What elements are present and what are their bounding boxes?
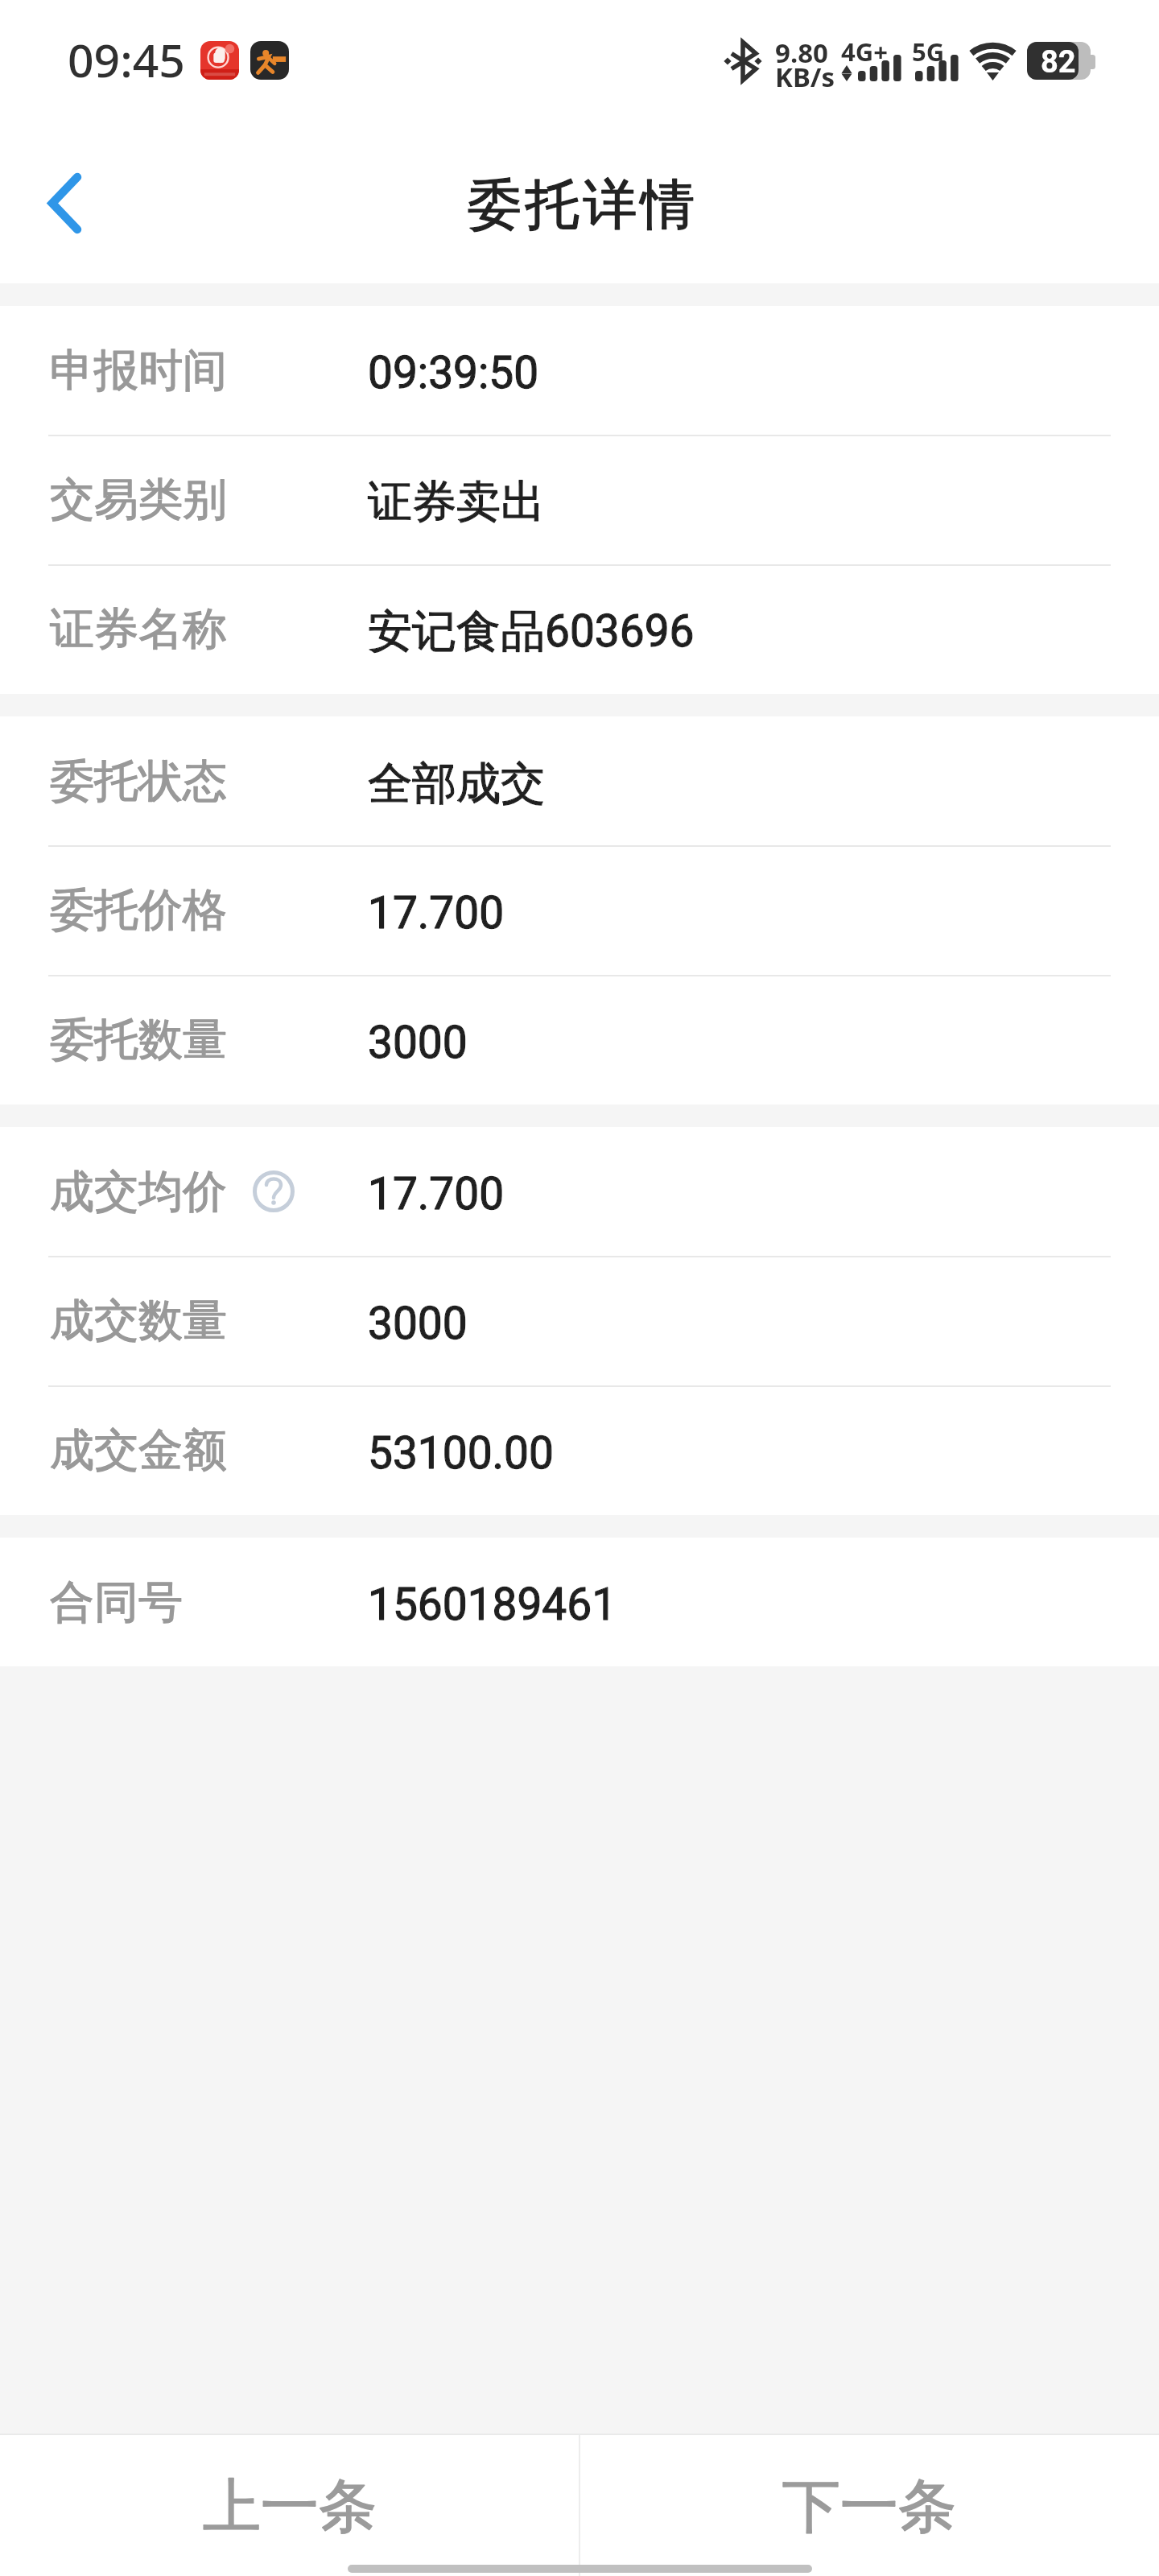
staticText: 17.700	[368, 887, 505, 939]
staticText: 5G	[912, 35, 945, 68]
staticText: 证券名称	[50, 601, 227, 657]
button[interactable]: 委托数量	[0, 975, 1159, 1104]
staticText: 9.80	[775, 35, 828, 71]
staticText: 09:39:50	[368, 347, 539, 398]
staticText: 上一条	[203, 2471, 377, 2544]
staticText: 17.700	[368, 1168, 505, 1220]
staticText: 下一条	[782, 2471, 956, 2544]
staticText: 17.700	[368, 1168, 505, 1220]
staticText: 下一条	[782, 2471, 956, 2544]
staticText: 3000	[368, 1298, 468, 1349]
staticText: 成交均价	[50, 1164, 227, 1220]
staticText: 1560189461	[368, 1579, 617, 1630]
staticText: 申报时间	[50, 343, 227, 398]
staticText: 17.700	[368, 887, 505, 939]
staticText: KB/s	[775, 59, 835, 95]
staticText: 53100.00	[368, 1427, 554, 1479]
staticText: 交易类别	[50, 472, 227, 527]
button[interactable]: Back	[0, 117, 129, 283]
button[interactable]: 申报时间	[0, 306, 1159, 435]
button[interactable]: 成交均价	[0, 1127, 1159, 1256]
staticText: 成交数量	[50, 1293, 227, 1348]
staticText: 成交均价	[50, 1164, 227, 1220]
staticText: 委托价格	[50, 882, 227, 938]
button[interactable]: 成交金额	[0, 1385, 1159, 1515]
staticText: 交易类别	[50, 472, 227, 527]
staticText: 安记食品603696	[368, 604, 695, 659]
staticText: 证券名称	[50, 601, 227, 657]
staticText: 3000	[368, 1017, 468, 1068]
staticText: 09:39:50	[368, 347, 539, 398]
button[interactable]: 委托价格	[0, 845, 1159, 975]
button[interactable]: 下一条	[579, 2434, 1159, 2576]
staticText: 1560189461	[368, 1579, 617, 1630]
staticText: 4G+	[841, 35, 888, 68]
staticText: 53100.00	[368, 1427, 554, 1479]
staticText: 成交金额	[50, 1422, 227, 1478]
staticText: 3000	[368, 1298, 468, 1349]
staticText: 安记食品603696	[368, 604, 695, 659]
staticText: 委托状态	[50, 753, 227, 809]
staticText: 合同号	[50, 1575, 183, 1630]
button[interactable]: 合同号	[0, 1538, 1159, 1666]
staticText: 成交数量	[50, 1293, 227, 1348]
staticText: 09:45	[68, 28, 185, 91]
staticText: 全部成交	[368, 756, 545, 811]
button[interactable]: 委托状态	[0, 716, 1159, 845]
staticText: 委托价格	[50, 882, 227, 938]
staticText: 委托状态	[50, 753, 227, 809]
staticText: 合同号	[50, 1575, 183, 1630]
staticText: 委托数量	[50, 1012, 227, 1067]
staticText: 申报时间	[50, 343, 227, 398]
staticText: 委托数量	[50, 1012, 227, 1067]
button[interactable]: 证券名称	[0, 564, 1159, 694]
staticText: 全部成交	[368, 756, 545, 811]
staticText: 82	[1041, 44, 1076, 80]
staticText: 委托详情	[468, 171, 699, 238]
button[interactable]: 上一条	[0, 2434, 579, 2576]
button[interactable]: What is average fill price?	[253, 1170, 295, 1212]
staticText: 证券卖出	[368, 474, 545, 530]
staticText: 委托详情	[468, 171, 699, 238]
staticText: 上一条	[203, 2471, 377, 2544]
button[interactable]: 成交数量	[0, 1256, 1159, 1385]
staticText: 成交金额	[50, 1422, 227, 1478]
staticText: 证券卖出	[368, 474, 545, 530]
button[interactable]: 交易类别	[0, 435, 1159, 564]
staticText: 3000	[368, 1017, 468, 1068]
